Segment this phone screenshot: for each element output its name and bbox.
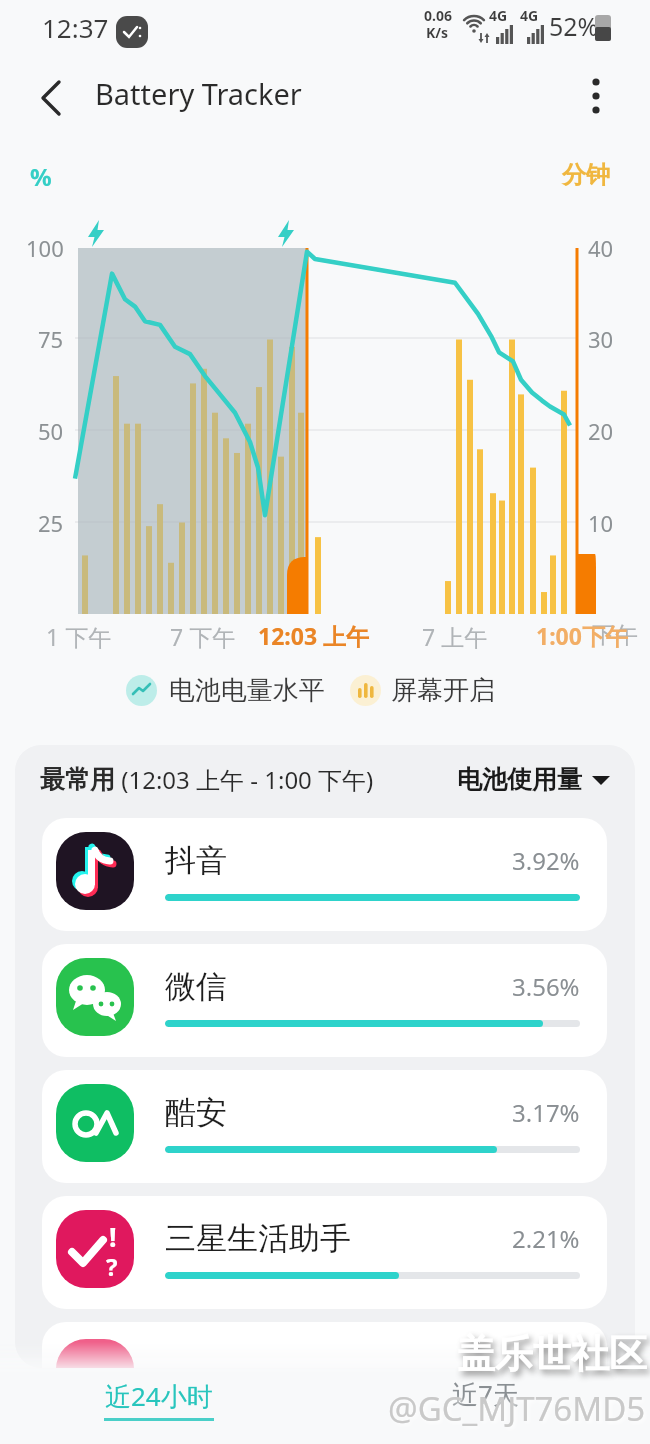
staticText: K/s <box>426 23 449 42</box>
staticText: 10 <box>588 508 614 538</box>
staticText: ? <box>106 1250 118 1283</box>
staticText: 近7天 <box>452 1376 519 1412</box>
button[interactable]: 抖音 <box>42 818 607 931</box>
button[interactable]: 近24小时 <box>104 1378 214 1421</box>
button[interactable]: ! <box>42 1196 607 1309</box>
staticText: 3.17% <box>512 1096 580 1129</box>
button[interactable]: 酷安 <box>42 1070 607 1183</box>
staticText: 最常用 <box>40 764 115 795</box>
button[interactable]: 近7天 <box>452 1376 519 1412</box>
staticText: % <box>30 160 52 193</box>
staticText: (12:03 上午 - 1:00 下午) <box>115 763 374 796</box>
staticText: 7 下午 <box>170 621 236 652</box>
staticText: 40 <box>588 233 614 263</box>
staticText: 屏幕开启 <box>391 674 495 707</box>
staticText: 30 <box>588 324 614 354</box>
staticText: 4G <box>489 6 508 25</box>
button[interactable] <box>572 72 620 120</box>
staticText: 20 <box>588 416 614 446</box>
staticText: 25 <box>38 508 64 538</box>
staticText: 3.56% <box>512 970 580 1003</box>
staticText: 12:37 <box>42 10 109 45</box>
staticText: 1 下午 <box>46 621 112 652</box>
staticText: 近24小时 <box>105 1378 213 1414</box>
staticText: 4G <box>520 6 539 25</box>
staticText: 0.06 <box>424 6 452 25</box>
staticText: 三星生活助手 <box>165 1219 351 1258</box>
staticText: 75 <box>38 324 64 354</box>
staticText: 下午 <box>592 621 638 650</box>
staticText: 电池使用量 <box>457 764 582 795</box>
staticText: 7 上午 <box>422 621 488 652</box>
staticText: 1:00下午 <box>536 620 628 651</box>
staticText: 电池电量水平 <box>169 674 325 707</box>
staticText: 3.92% <box>512 844 580 877</box>
staticText: 微信 <box>165 967 227 1006</box>
button[interactable]: 电池使用量 <box>457 764 610 795</box>
staticText: 50 <box>38 416 64 446</box>
staticText: 盖乐世社区 <box>457 1330 647 1378</box>
staticText: 酷安 <box>165 1093 227 1132</box>
staticText: 100 <box>26 233 64 263</box>
staticText: 52% <box>549 9 599 43</box>
button[interactable] <box>42 1322 607 1368</box>
staticText: 12:03 上午 <box>258 620 370 651</box>
button[interactable]: 微信 <box>42 944 607 1057</box>
staticText: ! <box>109 1218 117 1255</box>
button[interactable] <box>28 74 76 122</box>
staticText: 2.21% <box>512 1222 580 1255</box>
staticText: 抖音 <box>165 841 227 880</box>
staticText: Battery Tracker <box>95 74 302 113</box>
staticText: 分钟 <box>562 160 610 190</box>
staticText: @GC_MJT76MD5 <box>388 1386 646 1431</box>
